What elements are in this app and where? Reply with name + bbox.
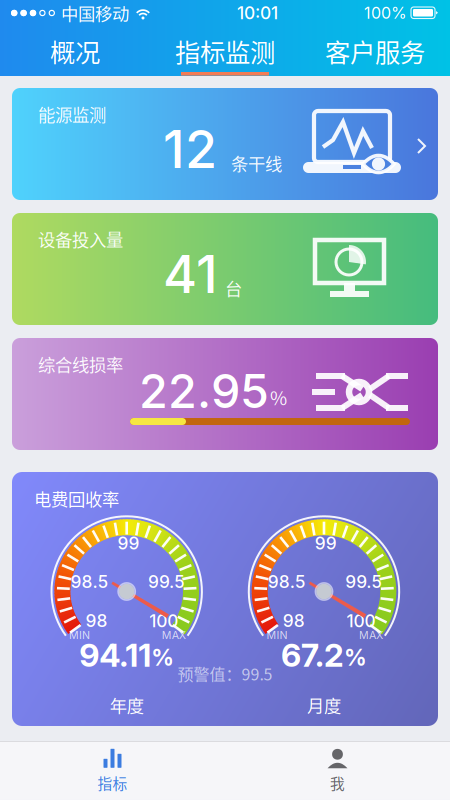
staticText: MAX <box>162 629 186 641</box>
staticText: 99 <box>315 533 337 554</box>
staticText: 100% <box>364 3 407 23</box>
staticText: MIN <box>69 629 90 641</box>
button[interactable]: 设备投入量 <box>12 213 438 325</box>
staticText: 98.5 <box>268 571 306 592</box>
staticText: % <box>270 383 287 410</box>
staticText: 台 <box>225 275 242 301</box>
button[interactable]: 指标 <box>0 742 225 800</box>
staticText: 99.5 <box>148 571 185 592</box>
staticText: 67.2 <box>281 636 344 674</box>
staticText: 41 <box>163 242 218 305</box>
staticText: 预警值：99.5 <box>177 662 272 685</box>
staticText: 月度 <box>307 692 341 718</box>
staticText: 电费回收率 <box>34 486 119 511</box>
staticText: % <box>344 644 367 671</box>
staticText: MAX <box>359 629 383 641</box>
staticText: 概况 <box>50 33 100 69</box>
button[interactable]: 客户服务 <box>300 26 450 76</box>
staticText: 98 <box>85 610 107 631</box>
staticText: 综合线损率 <box>38 351 123 377</box>
button[interactable]: 概况 <box>0 26 150 76</box>
staticText: 条干线 <box>231 150 282 176</box>
staticText: 100 <box>149 610 178 631</box>
staticText: 98 <box>283 610 305 631</box>
staticText: 指标监测 <box>175 33 275 69</box>
staticText: 100 <box>346 610 375 631</box>
button[interactable]: 我 <box>225 742 450 800</box>
button[interactable]: 指标监测 <box>150 26 300 76</box>
staticText: % <box>151 644 174 671</box>
staticText: 设备投入量 <box>38 226 123 252</box>
button[interactable]: 综合线损率 <box>12 338 438 450</box>
staticText: 客户服务 <box>325 33 425 69</box>
staticText: 中国移动 <box>61 0 129 26</box>
staticText: 年度 <box>110 692 144 718</box>
staticText: 我 <box>330 772 345 793</box>
staticText: 22.95 <box>139 363 269 419</box>
staticText: 10:01 <box>237 2 278 23</box>
button[interactable]: 能源监测 <box>12 88 438 200</box>
staticText: 99.5 <box>345 571 382 592</box>
staticText: 能源监测 <box>38 101 106 127</box>
staticText: 12 <box>163 117 217 180</box>
staticText: 指标 <box>97 772 127 793</box>
staticText: 94.11 <box>79 636 151 674</box>
staticText: 98.5 <box>70 571 108 592</box>
staticText: 99 <box>117 533 139 554</box>
staticText: MIN <box>266 629 287 641</box>
